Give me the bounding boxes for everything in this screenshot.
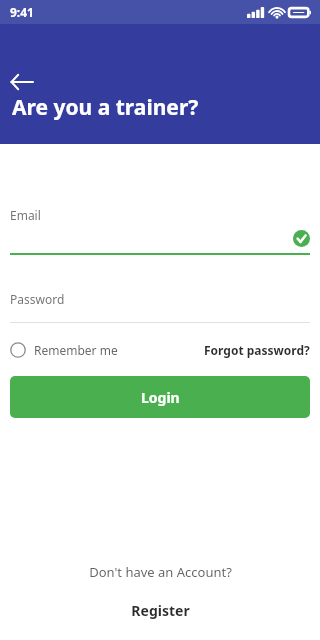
staticText: Remember me bbox=[34, 342, 118, 358]
staticText: Don't have an Account? bbox=[89, 563, 232, 581]
staticText: Forgot password? bbox=[204, 342, 310, 358]
staticText: Register bbox=[131, 601, 190, 620]
button[interactable]: Remember me bbox=[10, 340, 118, 360]
button[interactable]: Forgot password? bbox=[204, 340, 310, 360]
button[interactable] bbox=[10, 223, 310, 253]
staticText: Email bbox=[10, 207, 41, 223]
staticText: Password bbox=[10, 291, 65, 307]
staticText: Login bbox=[141, 388, 180, 407]
staticText: Are you a trainer? bbox=[12, 93, 199, 122]
button[interactable]: Login bbox=[10, 376, 310, 418]
button[interactable]: Back bbox=[4, 64, 40, 100]
button[interactable]: Register bbox=[119, 599, 202, 622]
staticText: 9:41 bbox=[10, 4, 34, 20]
